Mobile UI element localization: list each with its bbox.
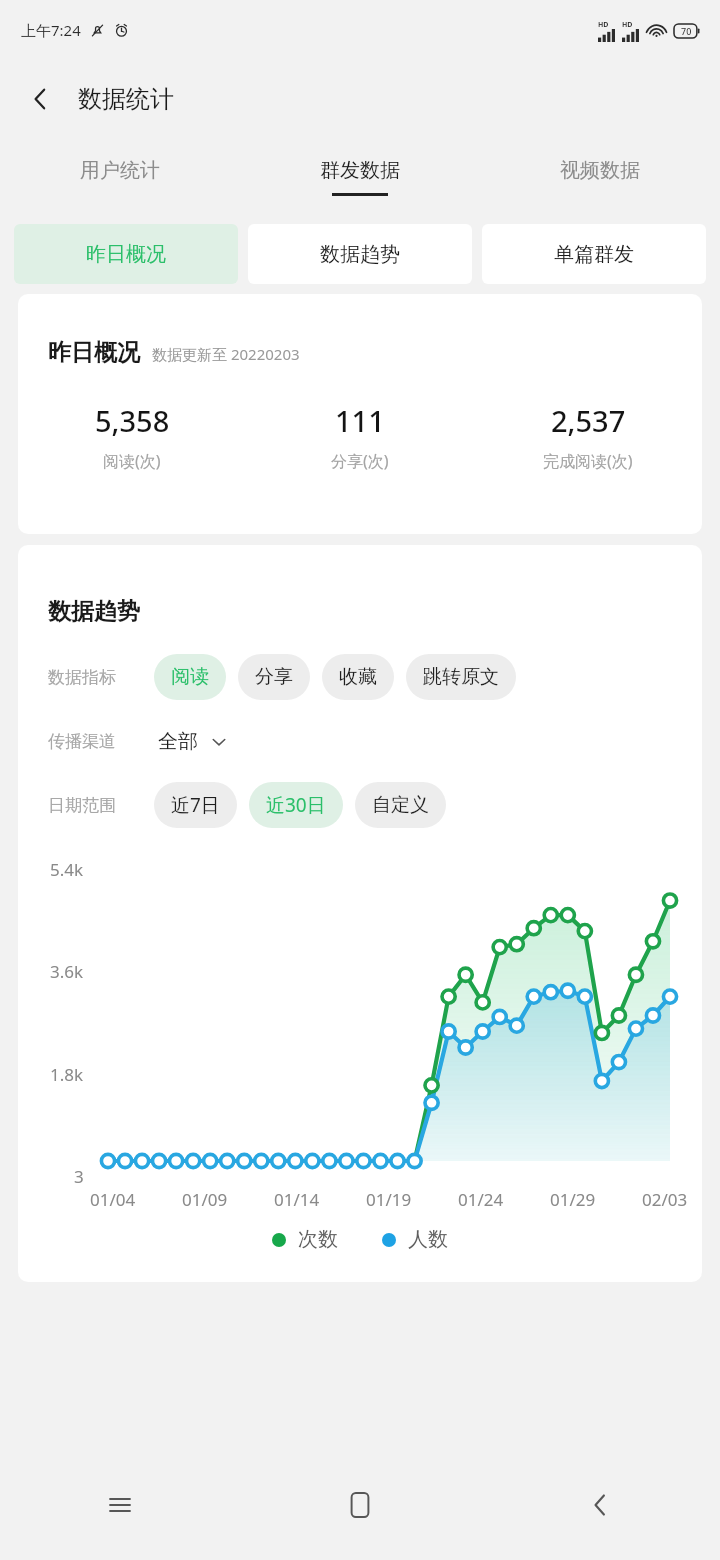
staticText: 01/04	[90, 1188, 136, 1211]
button[interactable]: 2,537	[474, 401, 702, 472]
staticText: 人数	[408, 1227, 448, 1252]
button[interactable]: 视频数据	[480, 138, 720, 216]
button[interactable]: 单篇群发	[482, 224, 706, 284]
staticText: 阅读	[171, 665, 209, 689]
button[interactable]: 自定义	[355, 782, 446, 828]
button[interactable]: 阅读	[154, 654, 226, 700]
staticText: 上午7:24	[21, 20, 81, 40]
staticText: 3.6k	[50, 960, 84, 983]
button[interactable]: 昨日概况	[14, 224, 238, 284]
staticText: 数据统计	[78, 84, 174, 114]
staticText: 数据趋势	[320, 242, 400, 267]
button[interactable]: 最近任务	[0, 1450, 240, 1560]
staticText: 阅读(次)	[103, 450, 161, 472]
button[interactable]: 次数	[272, 1227, 338, 1252]
button[interactable]: 近30日	[249, 782, 343, 828]
button[interactable]: 群发数据	[240, 138, 480, 216]
staticText: 数据指标	[48, 667, 116, 688]
staticText: HD	[598, 20, 609, 30]
staticText: 70	[681, 25, 692, 37]
staticText: 视频数据	[560, 158, 640, 183]
staticText: 分享(次)	[331, 450, 389, 472]
staticText: 群发数据	[320, 158, 400, 183]
button[interactable]: 近7日	[154, 782, 237, 828]
staticText: 3	[74, 1165, 84, 1188]
staticText: 全部	[158, 729, 198, 754]
staticText: 收藏	[339, 665, 377, 689]
staticText: 01/09	[182, 1188, 228, 1211]
button[interactable]: 跳转原文	[406, 654, 516, 700]
staticText: 分享	[255, 665, 293, 689]
staticText: 日期范围	[48, 795, 116, 816]
staticText: 数据更新至 20220203	[152, 344, 300, 364]
staticText: 单篇群发	[554, 242, 634, 267]
button[interactable]: 返回	[14, 73, 66, 125]
staticText: 昨日概况	[48, 338, 140, 367]
button[interactable]: 5,358	[18, 401, 246, 472]
staticText: 完成阅读(次)	[543, 450, 633, 472]
staticText: 5,358	[95, 401, 170, 440]
button[interactable]: 主屏幕	[240, 1450, 480, 1560]
staticText: 次数	[298, 1227, 338, 1252]
staticText: 近7日	[171, 792, 220, 818]
button[interactable]: 全部	[158, 729, 228, 754]
button[interactable]: 数据趋势	[248, 224, 472, 284]
button[interactable]: 人数	[382, 1227, 448, 1252]
staticText: 跳转原文	[423, 665, 499, 689]
staticText: 01/14	[274, 1188, 320, 1211]
staticText: 01/29	[550, 1188, 596, 1211]
staticText: 02/03	[642, 1188, 688, 1211]
button[interactable]: 收藏	[322, 654, 394, 700]
staticText: 自定义	[372, 793, 429, 817]
staticText: 传播渠道	[48, 731, 116, 752]
button[interactable]: 用户统计	[0, 138, 240, 216]
staticText: 2,537	[551, 401, 626, 440]
button[interactable]: 返回	[480, 1450, 720, 1560]
staticText: 昨日概况	[86, 242, 166, 267]
staticText: 用户统计	[80, 158, 160, 183]
staticText: 数据趋势	[48, 597, 140, 626]
staticText: 111	[335, 401, 385, 440]
staticText: 01/24	[458, 1188, 504, 1211]
staticText: 01/19	[366, 1188, 412, 1211]
button[interactable]: 分享	[238, 654, 310, 700]
staticText: 近30日	[266, 792, 326, 818]
staticText: HD	[622, 20, 633, 30]
button[interactable]: 111	[246, 401, 474, 472]
staticText: 1.8k	[50, 1063, 84, 1086]
staticText: 5.4k	[50, 858, 84, 881]
